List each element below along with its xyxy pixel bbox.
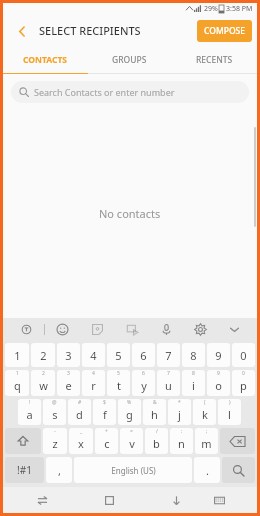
- staticText: .: [206, 463, 209, 478]
- button[interactable]: ,: [46, 457, 72, 483]
- staticText: 6: [142, 370, 145, 377]
- staticText: 1: [16, 370, 19, 377]
- button[interactable]: GIF: [115, 318, 149, 341]
- staticText: ;: [206, 428, 208, 435]
- button[interactable]: %: [118, 399, 141, 425]
- button[interactable]: #: [68, 399, 91, 425]
- staticText: e: [65, 378, 72, 393]
- button[interactable]: Sticker: [80, 318, 115, 341]
- staticText: 8: [192, 370, 195, 377]
- button[interactable]: 4: [82, 343, 105, 367]
- staticText: h: [151, 407, 158, 422]
- button[interactable]: Backspace: [220, 428, 255, 454]
- button[interactable]: .: [194, 457, 220, 483]
- button[interactable]: 8: [182, 370, 205, 396]
- button[interactable]: COMPOSE: [197, 20, 252, 42]
- button[interactable]: 2: [31, 370, 55, 396]
- button[interactable]: ): [218, 399, 241, 425]
- button[interactable]: 3: [57, 370, 80, 396]
- staticText: z: [52, 436, 58, 451]
- button[interactable]: 8: [182, 343, 205, 367]
- button[interactable]: 5: [107, 343, 130, 367]
- button[interactable]: 3: [57, 343, 80, 367]
- staticText: ,: [58, 463, 61, 478]
- button[interactable]: =: [120, 428, 143, 454]
- button[interactable]: Search: [222, 457, 255, 483]
- button[interactable]: 1: [5, 343, 29, 367]
- button[interactable]: Recents: [30, 488, 54, 512]
- button[interactable]: !#1: [5, 457, 44, 483]
- button[interactable]: _: [69, 428, 93, 454]
- button[interactable]: 0: [232, 343, 255, 367]
- button[interactable]: Voice input: [149, 318, 183, 341]
- button[interactable]: (: [193, 399, 216, 425]
- button[interactable]: 9: [207, 343, 230, 367]
- staticText: 2: [40, 348, 47, 363]
- button[interactable]: +: [95, 428, 118, 454]
- staticText: i: [192, 378, 195, 393]
- button[interactable]: RECENTS: [172, 47, 257, 73]
- button[interactable]: Back: [11, 20, 33, 42]
- button[interactable]: 4: [82, 370, 105, 396]
- button[interactable]: 7: [157, 343, 180, 367]
- button[interactable]: 5: [107, 370, 130, 396]
- staticText: :: [181, 428, 183, 435]
- button[interactable]: *: [168, 399, 191, 425]
- button[interactable]: -: [43, 428, 67, 454]
- staticText: &: [153, 399, 157, 406]
- button[interactable]: Home: [97, 488, 121, 512]
- button[interactable]: :: [170, 428, 193, 454]
- button[interactable]: Collapse: [217, 318, 251, 341]
- button[interactable]: English (US): [74, 457, 192, 483]
- staticText: 4: [92, 370, 95, 377]
- staticText: No contacts: [99, 206, 161, 221]
- staticText: !#1: [17, 463, 32, 477]
- button[interactable]: /: [145, 428, 168, 454]
- button[interactable]: ;: [195, 428, 218, 454]
- staticText: %: [127, 399, 132, 406]
- staticText: v: [129, 436, 135, 451]
- button[interactable]: &: [143, 399, 166, 425]
- staticText: 5: [117, 370, 120, 377]
- button[interactable]: 2: [31, 343, 55, 367]
- staticText: 5: [115, 348, 122, 363]
- button[interactable]: Emoji: [45, 318, 80, 341]
- staticText: r: [91, 378, 96, 393]
- staticText: 4: [90, 348, 97, 363]
- button[interactable]: $: [93, 399, 116, 425]
- button[interactable]: Hide keyboard: [164, 488, 188, 512]
- staticText: RECENTS: [196, 54, 233, 66]
- button[interactable]: Search Contacts or enter number: [11, 81, 249, 103]
- button[interactable]: 0: [232, 370, 255, 396]
- staticText: /: [156, 428, 158, 435]
- button[interactable]: 9: [207, 370, 230, 396]
- staticText: GROUPS: [112, 54, 147, 66]
- button[interactable]: CONTACTS: [3, 47, 87, 73]
- staticText: c: [104, 436, 110, 451]
- staticText: CONTACTS: [23, 54, 67, 66]
- button[interactable]: Shift: [5, 428, 41, 454]
- staticText: g: [126, 407, 133, 422]
- staticText: ): [229, 399, 231, 406]
- button[interactable]: GROUPS: [87, 47, 172, 73]
- staticText: COMPOSE: [204, 25, 245, 37]
- button[interactable]: Keyboard: [207, 488, 231, 512]
- staticText: f: [103, 407, 107, 422]
- button[interactable]: 1: [5, 370, 29, 396]
- button[interactable]: 7: [157, 370, 180, 396]
- staticText: 3: [65, 348, 72, 363]
- staticText: w: [39, 378, 48, 393]
- button[interactable]: Translate: [9, 318, 44, 341]
- button[interactable]: Settings: [183, 318, 217, 341]
- staticText: m: [201, 436, 212, 451]
- button[interactable]: 6: [132, 343, 155, 367]
- staticText: l: [228, 407, 231, 422]
- button[interactable]: !: [18, 399, 41, 425]
- staticText: d: [76, 407, 83, 422]
- button[interactable]: 6: [132, 370, 155, 396]
- staticText: u: [165, 378, 172, 393]
- button[interactable]: @: [43, 399, 66, 425]
- staticText: (: [204, 399, 206, 406]
- staticText: n: [178, 436, 185, 451]
- staticText: b: [153, 436, 160, 451]
